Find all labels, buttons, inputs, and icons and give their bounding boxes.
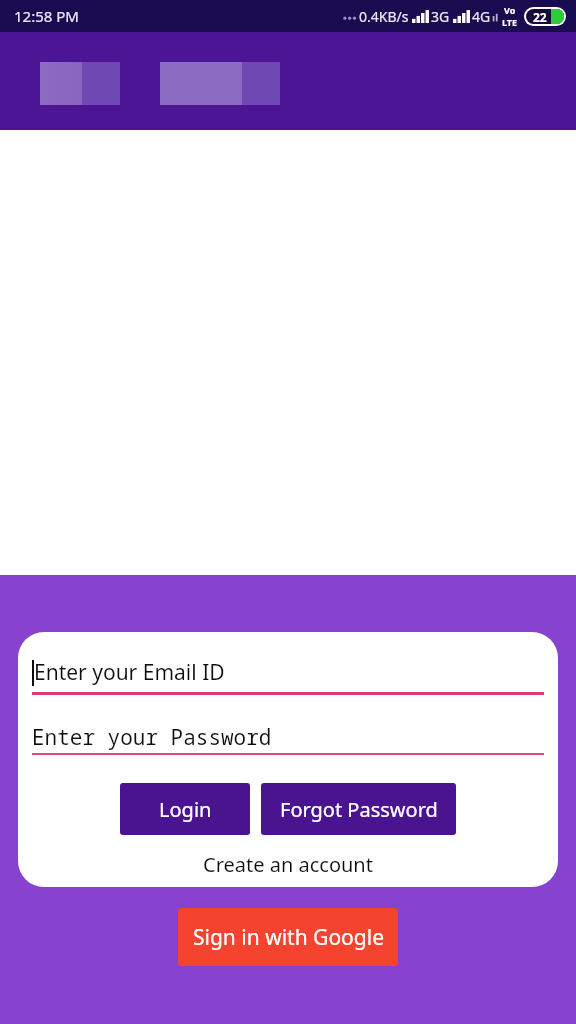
staticText: LTE [502,16,518,28]
staticText: Enter your Password [32,723,272,752]
staticText: Vo [504,4,516,16]
staticText: Enter your Email ID [34,658,225,687]
button[interactable]: Sign in with Google [178,908,398,966]
staticText: 12:58 PM [14,6,79,26]
button[interactable]: Enter your Password [32,721,544,753]
staticText: Login [159,796,212,823]
staticText: Create an account [203,851,373,878]
staticText: Sign in with Google [193,923,384,952]
staticText: 4G [472,7,491,26]
staticText: 3G [431,7,450,26]
button[interactable]: Create an account [197,849,379,880]
staticText: Forgot Password [280,796,438,823]
staticText: 0.4KB/s [359,7,409,26]
button[interactable]: Forgot Password [261,783,456,835]
staticText: 22 [533,9,547,24]
button[interactable]: Enter your Email ID [32,658,544,692]
button[interactable]: Login [120,783,250,835]
